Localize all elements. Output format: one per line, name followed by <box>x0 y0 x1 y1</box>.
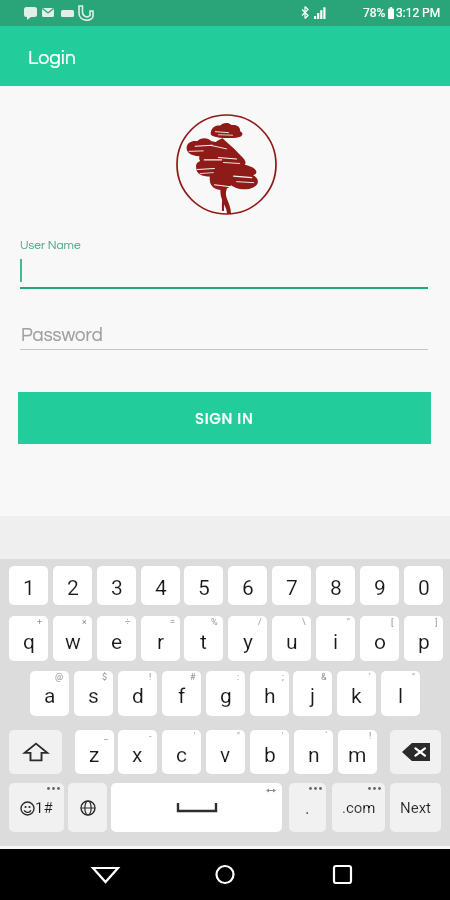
staticText: [ <box>391 617 394 628</box>
button[interactable]: t <box>184 616 223 661</box>
staticText: f <box>178 684 186 709</box>
staticText: ; <box>282 672 284 683</box>
button[interactable]: .com <box>332 783 385 832</box>
staticText: 0 <box>418 576 430 601</box>
button[interactable]: r <box>141 616 180 661</box>
button[interactable]: Back <box>75 849 135 900</box>
button[interactable]: n <box>294 730 333 774</box>
button[interactable]: h <box>250 671 289 716</box>
button[interactable]: 1 <box>9 566 48 605</box>
button[interactable]: 0 <box>404 566 443 605</box>
staticText: # <box>190 672 196 683</box>
staticText: p <box>418 630 430 655</box>
button[interactable]: Language <box>68 783 107 832</box>
button[interactable]: y <box>228 616 267 661</box>
staticText: ! <box>149 672 152 683</box>
button[interactable]: f <box>162 671 201 716</box>
staticText: @ <box>55 672 64 683</box>
button[interactable]: 5 <box>184 566 223 605</box>
staticText: 7 <box>286 576 298 601</box>
staticText: w <box>65 630 81 655</box>
staticText: 3 <box>111 576 123 601</box>
staticText: d <box>132 684 144 709</box>
staticText: Login <box>28 48 76 68</box>
button[interactable]: u <box>272 616 311 661</box>
button[interactable]: . <box>289 783 326 832</box>
button[interactable]: Home <box>195 849 255 900</box>
button[interactable]: 3 <box>97 566 136 605</box>
staticText: User Name <box>20 239 81 251</box>
staticText: ' <box>369 672 371 683</box>
button[interactable]: i <box>316 616 355 661</box>
button[interactable]: x <box>118 730 157 774</box>
button[interactable]: 4 <box>141 566 180 605</box>
button[interactable]: 6 <box>228 566 267 605</box>
staticText: k <box>351 684 362 709</box>
button[interactable]: d <box>118 671 157 716</box>
button[interactable]: Recents <box>315 849 375 900</box>
button[interactable]: p <box>404 616 443 661</box>
staticText: e <box>111 630 123 655</box>
staticText: 8 <box>330 576 342 601</box>
staticText: × <box>82 617 87 628</box>
button[interactable]: l <box>381 671 420 716</box>
button[interactable]: m <box>338 730 377 774</box>
staticText: m <box>348 743 367 768</box>
button[interactable]: q <box>9 616 48 661</box>
button[interactable]: j <box>293 671 332 716</box>
staticText: " <box>237 731 240 742</box>
button[interactable]: z <box>75 730 114 774</box>
staticText: t <box>200 630 207 655</box>
button[interactable]: o <box>360 616 399 661</box>
staticText: + <box>37 617 43 628</box>
button[interactable]: s <box>74 671 113 716</box>
staticText: $ <box>102 672 108 683</box>
staticText: ] <box>435 617 438 628</box>
staticText: / <box>258 617 262 628</box>
staticText: % <box>211 617 218 628</box>
button[interactable]: a <box>30 671 69 716</box>
staticText: . <box>305 798 310 818</box>
button[interactable]: 9 <box>360 566 399 605</box>
staticText: ! <box>369 731 372 742</box>
button[interactable]: w <box>53 616 92 661</box>
staticText: r <box>157 630 165 655</box>
staticText: .com <box>342 799 376 817</box>
staticText: : <box>237 672 240 683</box>
button[interactable]: Shift <box>9 730 62 774</box>
button[interactable]: g <box>206 671 245 716</box>
button[interactable]: e <box>97 616 136 661</box>
button[interactable]: Next <box>390 783 441 832</box>
button[interactable]: 1# <box>9 783 64 832</box>
staticText: b <box>264 743 276 768</box>
staticText: v <box>220 743 231 768</box>
staticText: SIGN IN <box>195 408 254 429</box>
staticText: 3:12 PM <box>396 6 441 20</box>
staticText: 78% <box>363 6 386 20</box>
button[interactable]: SIGN IN <box>18 392 431 444</box>
staticText: 4 <box>155 576 167 601</box>
button[interactable]: Backspace <box>390 730 441 774</box>
button[interactable]: 7 <box>272 566 311 605</box>
staticText: y <box>243 630 253 655</box>
staticText: = <box>170 617 175 628</box>
staticText: \ <box>302 617 306 628</box>
button[interactable]: 8 <box>316 566 355 605</box>
staticText: & <box>321 672 327 683</box>
staticText: 1# <box>35 799 53 817</box>
staticText: u <box>286 630 298 655</box>
staticText: 9 <box>374 576 386 601</box>
button[interactable]: c <box>162 730 201 774</box>
staticText: j <box>310 684 316 709</box>
staticText: z <box>89 743 100 768</box>
button[interactable]: 2 <box>53 566 92 605</box>
button[interactable]: Space <box>111 783 282 832</box>
button[interactable]: k <box>337 671 376 716</box>
staticText: - <box>149 731 152 742</box>
button[interactable]: v <box>206 730 245 774</box>
staticText: g <box>220 684 232 709</box>
staticText: ' <box>194 731 196 742</box>
staticText: " <box>347 617 350 628</box>
button[interactable]: b <box>250 730 289 774</box>
staticText: 6 <box>242 576 254 601</box>
